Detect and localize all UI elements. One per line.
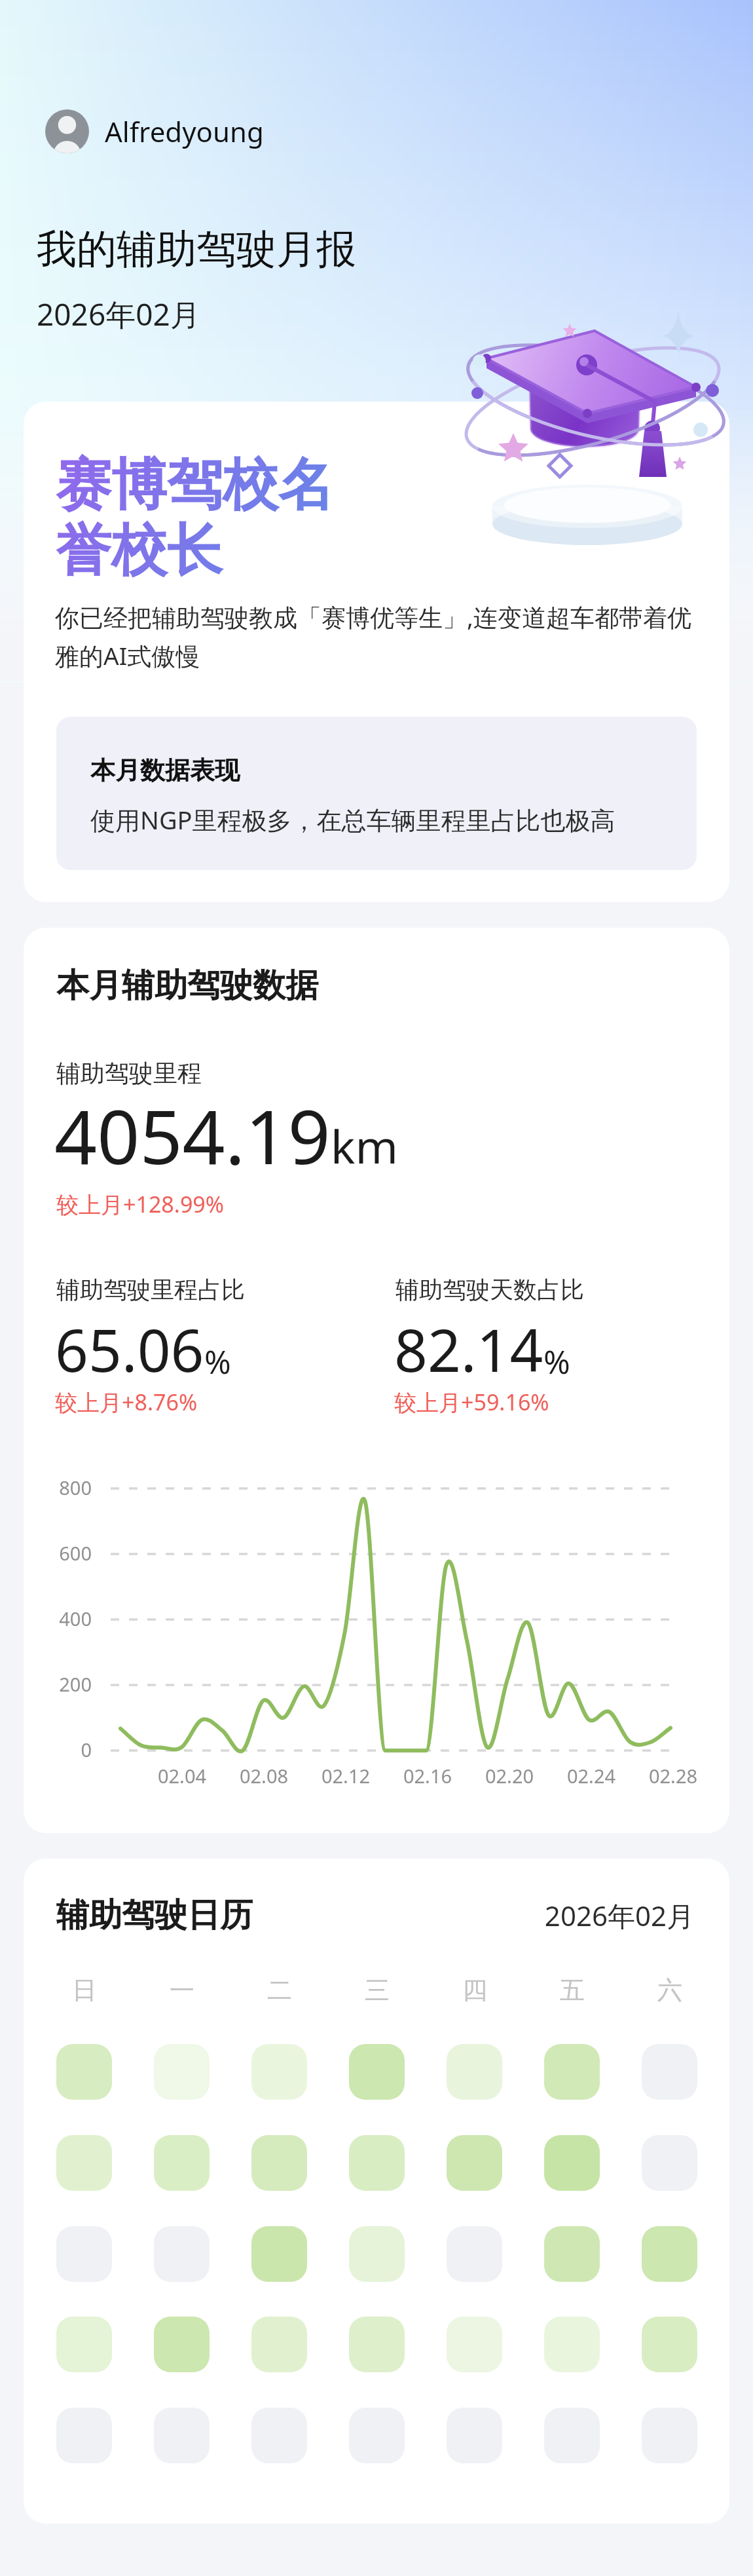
staticText: 辅助驾驶天数占比 [395, 1275, 584, 1304]
staticText: 600 [24, 1540, 92, 1566]
button[interactable] [56, 2226, 112, 2282]
button[interactable] [642, 2408, 697, 2463]
staticText: 四 [462, 1975, 487, 2006]
staticText: 三 [365, 1975, 390, 2006]
button[interactable] [349, 2317, 405, 2372]
button[interactable] [544, 2408, 600, 2463]
button[interactable] [251, 2226, 307, 2282]
button[interactable] [154, 2226, 210, 2282]
button[interactable] [447, 2044, 502, 2100]
staticText: 2026年02月 [37, 294, 200, 335]
button[interactable] [56, 2408, 112, 2463]
staticText: 02.12 [300, 1763, 392, 1789]
button[interactable] [642, 2317, 697, 2372]
staticText: 82.14 [394, 1310, 543, 1389]
staticText: 本月数据表现 [90, 755, 240, 786]
button[interactable] [544, 2044, 600, 2100]
button[interactable] [154, 2317, 210, 2372]
staticText: 4054.19 [54, 1084, 331, 1186]
staticText: % [204, 1340, 231, 1384]
staticText: 你已经把辅助驾驶教成「赛博优等生」,连变道超车都带着优雅的AI式傲慢 [55, 600, 703, 672]
staticText: km [331, 1114, 398, 1177]
staticText: Alfredyoung [105, 113, 264, 150]
staticText: 2026年02月 [524, 1897, 694, 1934]
button[interactable] [447, 2135, 502, 2191]
button[interactable] [544, 2135, 600, 2191]
staticText: 我的辅助驾驶月报 [37, 224, 356, 275]
button[interactable] [56, 2317, 112, 2372]
staticText: 400 [24, 1606, 92, 1631]
staticText: 使用NGP里程极多，在总车辆里程里占比也极高 [90, 803, 615, 837]
staticText: 五 [560, 1975, 585, 2006]
staticText: 较上月+8.76% [55, 1387, 198, 1417]
staticText: 02.08 [218, 1763, 310, 1789]
staticText: 较上月+59.16% [394, 1387, 549, 1417]
staticText: 02.28 [627, 1763, 719, 1789]
button[interactable] [251, 2317, 307, 2372]
staticText: 本月辅助驾驶数据 [56, 965, 318, 1006]
button[interactable] [349, 2226, 405, 2282]
button[interactable] [251, 2135, 307, 2191]
button[interactable] [642, 2135, 697, 2191]
button[interactable] [154, 2044, 210, 2100]
button[interactable] [251, 2408, 307, 2463]
staticText: 二 [267, 1975, 292, 2006]
button[interactable]: Profile [45, 109, 264, 153]
staticText: 0 [24, 1737, 92, 1762]
staticText: 赛博驾校名 誉校长 [56, 450, 334, 586]
button[interactable] [56, 2135, 112, 2191]
button[interactable] [642, 2044, 697, 2100]
staticText: 一 [170, 1975, 194, 2006]
button[interactable] [349, 2135, 405, 2191]
button[interactable] [251, 2044, 307, 2100]
staticText: 02.24 [545, 1763, 637, 1789]
staticText: 02.20 [464, 1763, 555, 1789]
staticText: 日 [72, 1975, 97, 2006]
staticText: 辅助驾驶日历 [56, 1895, 253, 1936]
staticText: 辅助驾驶里程 [56, 1058, 202, 1089]
button[interactable] [56, 2044, 112, 2100]
button[interactable] [349, 2408, 405, 2463]
staticText: 六 [657, 1975, 682, 2006]
staticText: 较上月+128.99% [56, 1189, 225, 1219]
button[interactable] [154, 2408, 210, 2463]
staticText: 辅助驾驶里程占比 [56, 1275, 245, 1304]
button[interactable] [447, 2226, 502, 2282]
staticText: 800 [24, 1475, 92, 1500]
button[interactable] [544, 2317, 600, 2372]
button[interactable] [447, 2408, 502, 2463]
staticText: % [543, 1340, 570, 1384]
button[interactable] [544, 2226, 600, 2282]
button[interactable] [349, 2044, 405, 2100]
button[interactable] [642, 2226, 697, 2282]
staticText: 02.16 [382, 1763, 473, 1789]
staticText: 200 [24, 1671, 92, 1697]
button[interactable] [447, 2317, 502, 2372]
staticText: 02.04 [136, 1763, 228, 1789]
staticText: 65.06 [55, 1310, 204, 1389]
button[interactable] [154, 2135, 210, 2191]
